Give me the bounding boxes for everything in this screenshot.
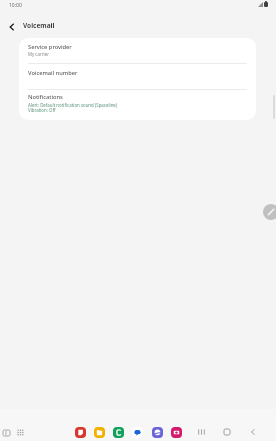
button[interactable]: Internet: [152, 427, 163, 438]
staticText: Voicemail number: [28, 69, 78, 77]
button[interactable]: Notifications: [19, 89, 256, 120]
staticText: 10:00: [9, 2, 22, 9]
button[interactable]: Phone: [113, 427, 124, 438]
staticText: Voicemail: [23, 21, 55, 30]
button[interactable]: Recents: [195, 425, 208, 438]
staticText: Vibration: Off: [28, 107, 56, 113]
button[interactable]: Camera: [171, 427, 182, 438]
staticText: My carrier: [28, 51, 49, 57]
button[interactable]: Multi window: [0, 426, 13, 439]
button[interactable]: Samsung Notes: [75, 427, 86, 438]
staticText: Service provider: [28, 43, 72, 51]
button[interactable]: Home: [220, 425, 233, 438]
button[interactable]: Navigate up: [4, 19, 19, 34]
staticText: Alert: Default notification sound (Space…: [28, 102, 118, 108]
button[interactable]: Edit: [263, 204, 276, 220]
button[interactable]: Service provider: [19, 38, 256, 63]
button[interactable]: Back: [246, 425, 259, 438]
button[interactable]: Voicemail number: [19, 63, 256, 89]
button[interactable]: Messages: [132, 427, 143, 438]
button[interactable]: My Files: [94, 427, 105, 438]
button[interactable]: All apps: [14, 426, 26, 438]
staticText: Notifications: [28, 93, 63, 101]
